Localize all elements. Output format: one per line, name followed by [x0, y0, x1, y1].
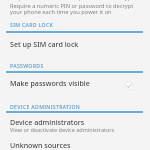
staticText: Require a numeric PIN or password to dec… — [10, 0, 134, 2]
button[interactable]: Set up SIM card lock — [0, 34, 150, 54]
staticText: Make passwords visible — [10, 78, 150, 88]
staticText: SIM CARD LOCK — [10, 21, 54, 28]
staticText: Unknown sources — [10, 140, 71, 150]
staticText: your phone each time you power it on — [10, 8, 112, 16]
staticText: Set up SIM card lock — [10, 39, 79, 49]
button[interactable]: Make passwords visible — [0, 73, 150, 93]
staticText: PASSWORDS — [10, 62, 44, 69]
button[interactable]: Make passwords visible checkbox — [125, 82, 133, 90]
button[interactable]: Device administrators — [0, 115, 150, 132]
staticText: Require a numeric PIN or password to dec… — [10, 2, 134, 10]
staticText: Device administrators — [10, 117, 85, 127]
button[interactable]: Unknown sources — [0, 139, 150, 150]
staticText: View or deactivate device administrators — [10, 126, 115, 133]
staticText: DEVICE ADMINISTRATION — [10, 103, 81, 110]
